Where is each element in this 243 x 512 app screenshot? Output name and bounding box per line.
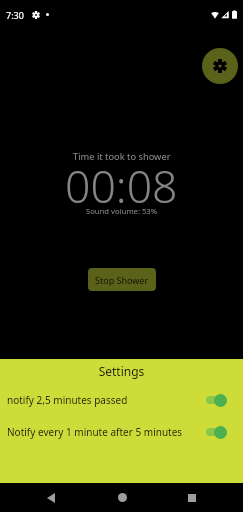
button[interactable]: notify 2,5 minutes passed bbox=[0, 392, 243, 408]
button[interactable]: Back bbox=[31, 483, 71, 512]
button[interactable]: Stop Shower bbox=[88, 268, 156, 291]
staticText: 7:30 bbox=[6, 9, 24, 21]
button[interactable]: Home bbox=[102, 483, 142, 512]
staticText: 00:08 bbox=[65, 155, 178, 216]
button[interactable]: Recents bbox=[172, 483, 212, 512]
staticText: Settings bbox=[0, 363, 243, 379]
staticText: Time it took to shower bbox=[73, 150, 171, 163]
button[interactable]: Settings bbox=[202, 48, 238, 84]
staticText: Notify every 1 minute after 5 minutes bbox=[7, 425, 205, 439]
button[interactable]: Notify every 1 minute after 5 minutes bbox=[0, 424, 243, 440]
staticText: notify 2,5 minutes passed bbox=[7, 393, 205, 407]
staticText: Sound volume: 53% bbox=[86, 206, 158, 216]
staticText: Stop Shower bbox=[95, 274, 149, 286]
